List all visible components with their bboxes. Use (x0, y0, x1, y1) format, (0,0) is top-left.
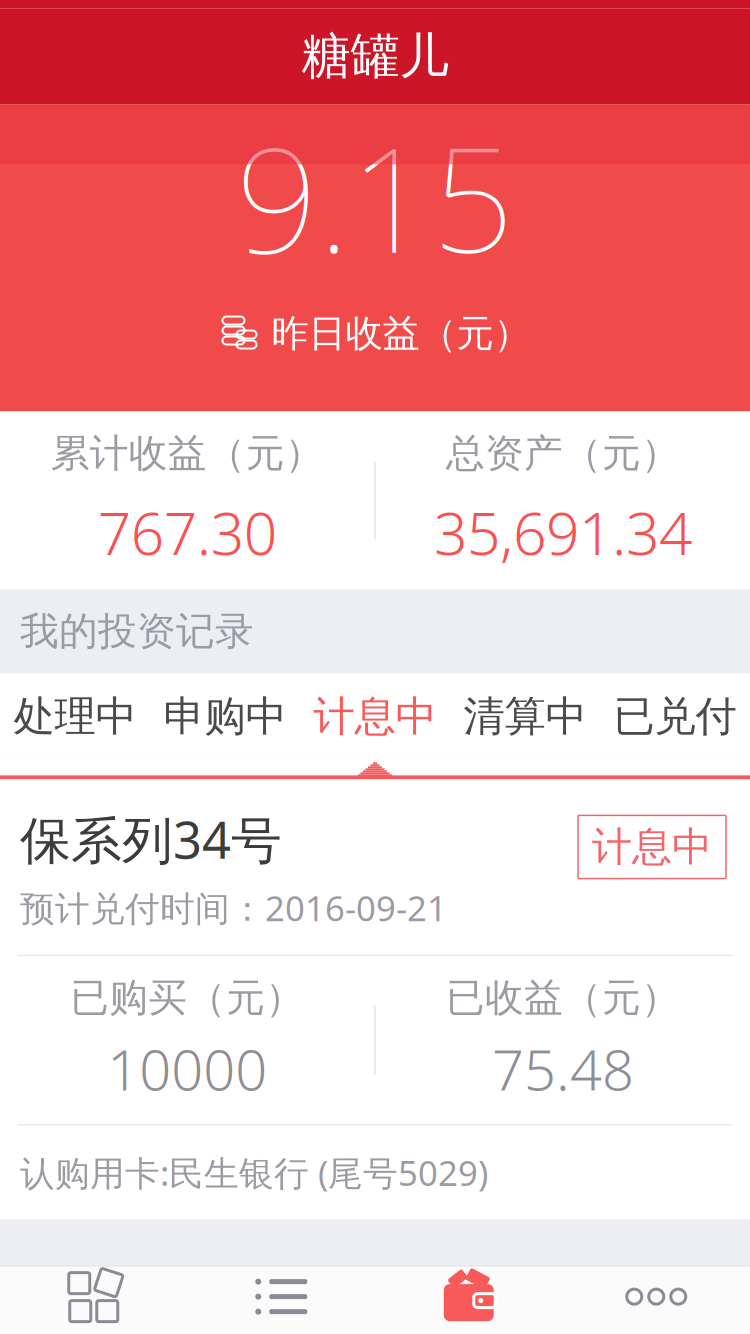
staticText: 已购买（元） (70, 974, 304, 1022)
button[interactable]: 申购中 (150, 673, 300, 759)
staticText: 保系列34号 (20, 805, 282, 873)
button[interactable]: 我的钱包 (375, 1267, 562, 1334)
staticText: 总资产（元） (446, 430, 680, 477)
staticText: 767.30 (98, 493, 277, 571)
staticText: 计息中 (313, 691, 436, 742)
button[interactable]: 清算中 (450, 673, 600, 759)
staticText: 75.48 (492, 1032, 634, 1106)
button[interactable]: 产品列表 (187, 1267, 375, 1334)
button[interactable]: 已兑付 (600, 673, 750, 759)
staticText: 申购中 (163, 691, 286, 742)
staticText: 9.15 (236, 101, 514, 293)
staticText: 认购用卡:民生银行 (尾号5029) (20, 1150, 488, 1196)
staticText: 10000 (107, 1032, 267, 1106)
staticText: 计息中 (592, 822, 712, 871)
staticText: 昨日收益（元） (271, 311, 530, 356)
staticText: 已收益（元） (446, 974, 680, 1022)
staticText: 清算中 (463, 691, 586, 742)
staticText: 预计兑付时间：2016-09-21 (20, 885, 447, 931)
button[interactable]: 保系列34号 (0, 779, 750, 1220)
staticText: 累计收益（元） (51, 430, 324, 477)
staticText: 35,691.34 (434, 493, 692, 571)
button[interactable]: 计息中 (300, 673, 450, 759)
button[interactable]: 精品推荐 (0, 1267, 187, 1334)
staticText: 处理中 (13, 691, 136, 742)
button[interactable]: 更多 (562, 1267, 750, 1334)
button[interactable]: 处理中 (0, 673, 150, 759)
staticText: 糖罐儿 (301, 26, 448, 87)
staticText: 我的投资记录 (20, 608, 254, 655)
staticText: 已兑付 (613, 691, 736, 742)
